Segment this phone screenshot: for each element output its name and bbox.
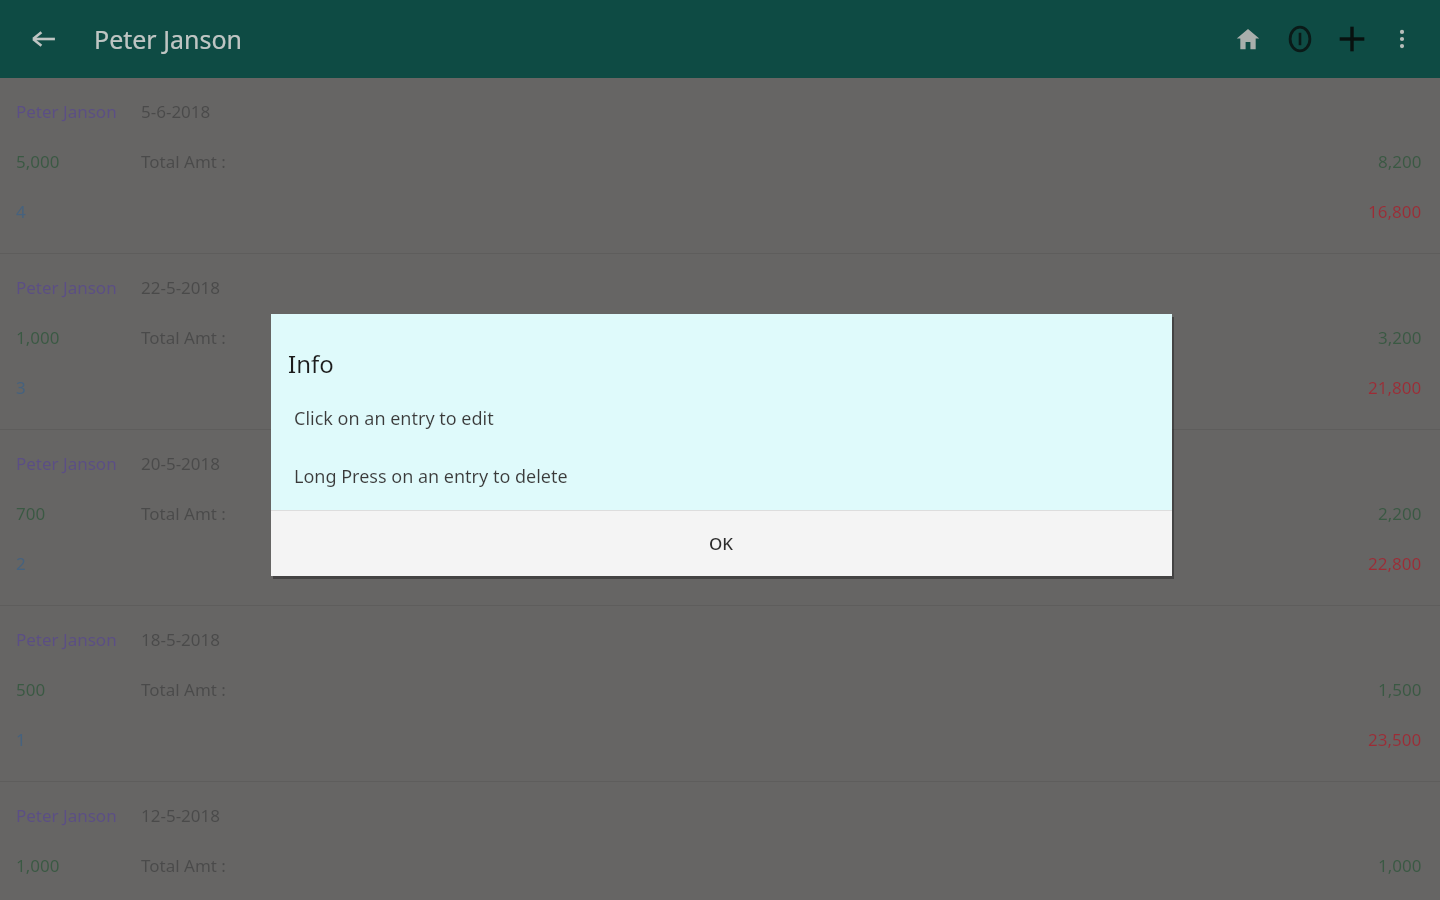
staticText: Peter Janson: [16, 452, 117, 475]
staticText: 16,800: [1368, 200, 1422, 223]
staticText: 5,000: [16, 150, 60, 173]
staticText: Info: [288, 347, 334, 380]
staticText: Peter Janson: [16, 804, 117, 827]
button[interactable]: OK: [271, 511, 1172, 576]
staticText: 2,200: [1378, 502, 1422, 525]
staticText: OK: [709, 532, 734, 555]
staticText: 2: [16, 552, 26, 575]
staticText: 8,200: [1378, 150, 1422, 173]
staticText: 4: [16, 200, 26, 223]
staticText: Total Amt :: [141, 678, 226, 701]
button[interactable]: Peter Janson: [0, 254, 1440, 429]
staticText: Peter Janson: [16, 276, 117, 299]
staticText: 5-6-2018: [141, 100, 211, 123]
button[interactable]: Peter Janson: [0, 430, 1440, 605]
staticText: Peter Janson: [16, 100, 117, 123]
staticText: 1,000: [16, 854, 60, 877]
staticText: Total Amt :: [141, 854, 226, 877]
staticText: 12-5-2018: [141, 804, 221, 827]
staticText: 23,500: [1368, 728, 1422, 751]
staticText: 3: [16, 376, 26, 399]
staticText: Click on an entry to edit: [294, 406, 494, 431]
staticText: 18-5-2018: [141, 628, 221, 651]
button[interactable]: More options: [1378, 13, 1426, 65]
button[interactable]: Add: [1326, 13, 1378, 65]
staticText: 1,500: [1378, 678, 1422, 701]
staticText: 700: [16, 502, 46, 525]
staticText: 21,800: [1368, 376, 1422, 399]
staticText: Total Amt :: [141, 150, 226, 173]
staticText: 22,800: [1368, 552, 1422, 575]
staticText: Total Amt :: [141, 502, 226, 525]
button[interactable]: Info: [1274, 13, 1326, 65]
button[interactable]: Back: [22, 17, 66, 61]
staticText: 1,000: [16, 326, 60, 349]
staticText: Peter Janson: [16, 628, 117, 651]
staticText: 20-5-2018: [141, 452, 221, 475]
staticText: Long Press on an entry to delete: [294, 464, 568, 489]
staticText: 22-5-2018: [141, 276, 221, 299]
button[interactable]: Home: [1222, 13, 1274, 65]
staticText: 1,000: [1378, 854, 1422, 877]
staticText: 1: [16, 728, 26, 751]
staticText: 500: [16, 678, 46, 701]
staticText: Peter Janson: [94, 22, 243, 56]
staticText: Total Amt :: [141, 326, 226, 349]
staticText: 3,200: [1378, 326, 1422, 349]
